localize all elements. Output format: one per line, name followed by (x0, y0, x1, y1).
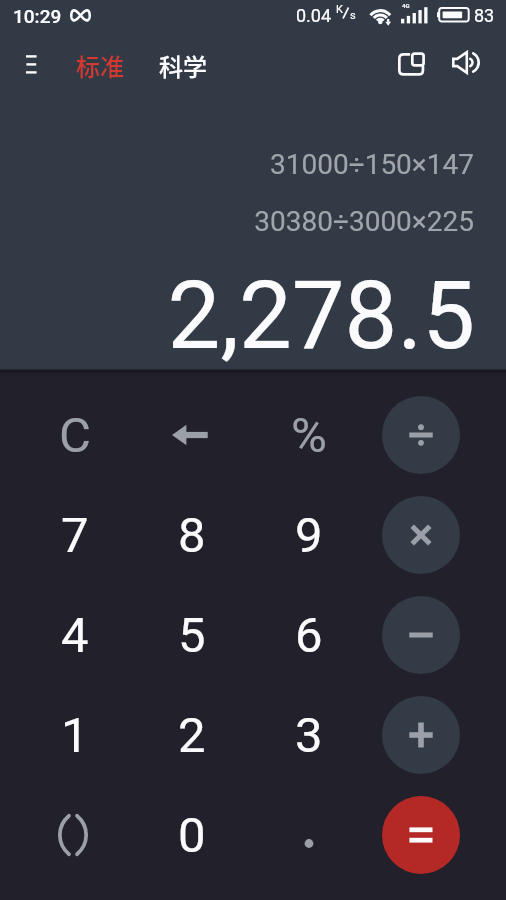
button[interactable]: Divide (382, 396, 460, 474)
staticText: 9 (295, 507, 323, 564)
staticText: 8 (178, 507, 206, 564)
button[interactable]: 4 (16, 585, 133, 685)
button[interactable]: 6 (250, 585, 367, 685)
button[interactable]: 7 (16, 485, 133, 585)
button[interactable]: % (250, 385, 367, 485)
button[interactable]: 8 (133, 485, 250, 585)
button[interactable]: C (16, 385, 133, 485)
button[interactable]: 2 (133, 685, 250, 785)
button[interactable]: 标准 (69, 43, 131, 88)
staticText: 标准 (76, 48, 124, 83)
staticText: 2 (178, 707, 206, 764)
button[interactable]: 0 (133, 785, 250, 885)
staticText: K (336, 3, 343, 16)
button[interactable]: Minus (382, 596, 460, 674)
button[interactable]: 科学 (152, 43, 214, 88)
staticText: 5 (178, 607, 206, 664)
button[interactable]: 1 (16, 685, 133, 785)
button[interactable]: Plus (382, 696, 460, 774)
staticText: 0 (178, 807, 206, 864)
staticText: 7 (61, 507, 89, 564)
staticText: 3 (295, 707, 323, 764)
button[interactable]: Multiply (382, 496, 460, 574)
staticText: C (59, 407, 91, 464)
staticText: 10:29 (13, 5, 62, 27)
staticText: 6 (295, 607, 323, 664)
button[interactable]: 3 (250, 685, 367, 785)
staticText: 0.04 (296, 5, 332, 26)
staticText: 4 (61, 607, 89, 664)
button[interactable]: Menu (11, 46, 51, 86)
staticText: 30380÷3000×225 (0, 205, 474, 238)
staticText: 科学 (159, 48, 207, 83)
button[interactable]: Picture in picture (391, 46, 435, 90)
staticText: 4G (402, 2, 410, 9)
button[interactable]: Sound (447, 45, 491, 89)
staticText: 83 (474, 5, 495, 26)
button[interactable]: 9 (250, 485, 367, 585)
button[interactable]: Equals (382, 796, 460, 874)
button[interactable]: Backspace (133, 385, 250, 485)
staticText: 31000÷150×147 (0, 148, 474, 181)
staticText: % (291, 407, 327, 464)
button[interactable]: Parentheses (16, 785, 133, 885)
button[interactable]: 5 (133, 585, 250, 685)
staticText: 1 (61, 707, 89, 764)
staticText: s (350, 9, 356, 22)
button[interactable]: Decimal point (250, 785, 367, 885)
staticText: 2,278.5 (0, 261, 475, 371)
